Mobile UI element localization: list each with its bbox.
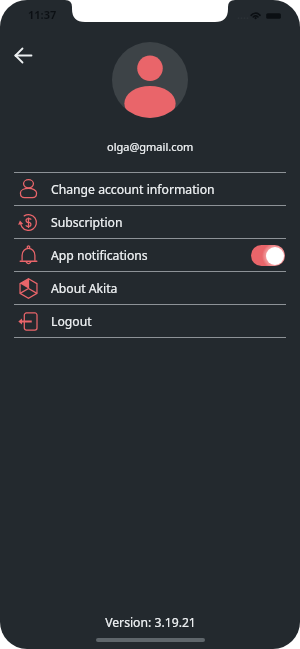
button[interactable]: About Akita — [14, 272, 286, 304]
button[interactable]: Subscription — [14, 206, 286, 238]
staticText: About Akita — [51, 280, 118, 297]
staticText: Change account information — [51, 181, 215, 198]
button[interactable]: App notifications toggle — [251, 245, 285, 266]
staticText: Version: 3.19.21 — [105, 614, 196, 631]
button[interactable]: App notifications — [14, 239, 286, 271]
button[interactable]: Profile photo — [112, 42, 188, 118]
staticText: App notifications — [51, 247, 148, 264]
staticText: olga@gmail.com — [107, 139, 194, 154]
staticText: Logout — [51, 313, 92, 330]
button[interactable]: Logout — [14, 305, 286, 337]
staticText: Subscription — [51, 214, 123, 231]
button[interactable]: Back — [6, 38, 40, 72]
staticText: 11:37 — [28, 7, 57, 22]
button[interactable]: Change account information — [14, 173, 286, 205]
